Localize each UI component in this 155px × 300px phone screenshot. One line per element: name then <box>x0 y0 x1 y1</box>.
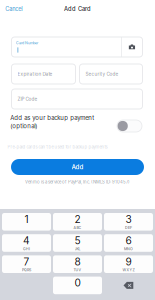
button[interactable]: 3 <box>104 213 153 231</box>
button[interactable]: ZIP Code <box>11 89 142 109</box>
staticText: 9 <box>125 256 131 268</box>
staticText: Venmo is a service of PayPal, Inc. (NMLS… <box>25 179 130 185</box>
button[interactable]: Add as your backup payment <box>117 120 142 132</box>
staticText: Expiration Date <box>17 71 52 77</box>
staticText: JKL <box>74 247 80 251</box>
staticText: (optional) <box>10 122 37 130</box>
staticText: ZIP Code <box>17 96 37 102</box>
button[interactable]: 5 <box>53 234 102 252</box>
staticText: PQRS <box>22 268 31 272</box>
staticText: ABC <box>73 225 81 230</box>
staticText: Add as your backup payment <box>10 114 94 121</box>
button[interactable]: 6 <box>104 234 153 252</box>
button[interactable]: 1 <box>2 213 51 231</box>
staticText: DEF <box>125 225 132 230</box>
staticText: Pre-paid cards can't be used for backup … <box>7 144 107 150</box>
staticText: 8 <box>74 256 80 268</box>
staticText: Security Code <box>85 71 118 77</box>
staticText: MNO <box>124 247 133 251</box>
staticText: 4 <box>23 234 30 247</box>
staticText: 3 <box>125 213 131 225</box>
button[interactable]: 8 <box>53 255 102 273</box>
button[interactable]: Scan card <box>121 37 142 57</box>
staticText: 5 <box>74 234 80 247</box>
staticText: GHI <box>23 247 30 251</box>
button[interactable]: 9 <box>104 255 153 273</box>
button[interactable]: 4 <box>2 234 51 252</box>
button[interactable]: Expiration Date <box>11 64 75 84</box>
button[interactable]: Add <box>11 159 144 175</box>
staticText: WXYZ <box>122 268 134 272</box>
button[interactable]: Security Code <box>79 64 142 84</box>
staticText: 0 <box>74 277 80 289</box>
button[interactable]: Delete <box>104 277 153 294</box>
button[interactable]: Cancel <box>5 2 29 16</box>
staticText: TUV <box>73 268 81 272</box>
staticText: 2 <box>74 213 80 225</box>
staticText: 1 <box>24 213 28 225</box>
staticText: Add <box>71 163 83 171</box>
button[interactable]: 0 <box>53 277 102 294</box>
staticText: Add Card <box>64 5 91 12</box>
staticText: Card Number <box>16 41 38 45</box>
staticText: 7 <box>23 256 29 268</box>
staticText: Cancel <box>5 6 22 12</box>
button[interactable]: 2 <box>53 213 102 231</box>
staticText: 6 <box>125 234 131 247</box>
button[interactable]: 7 <box>2 255 51 273</box>
